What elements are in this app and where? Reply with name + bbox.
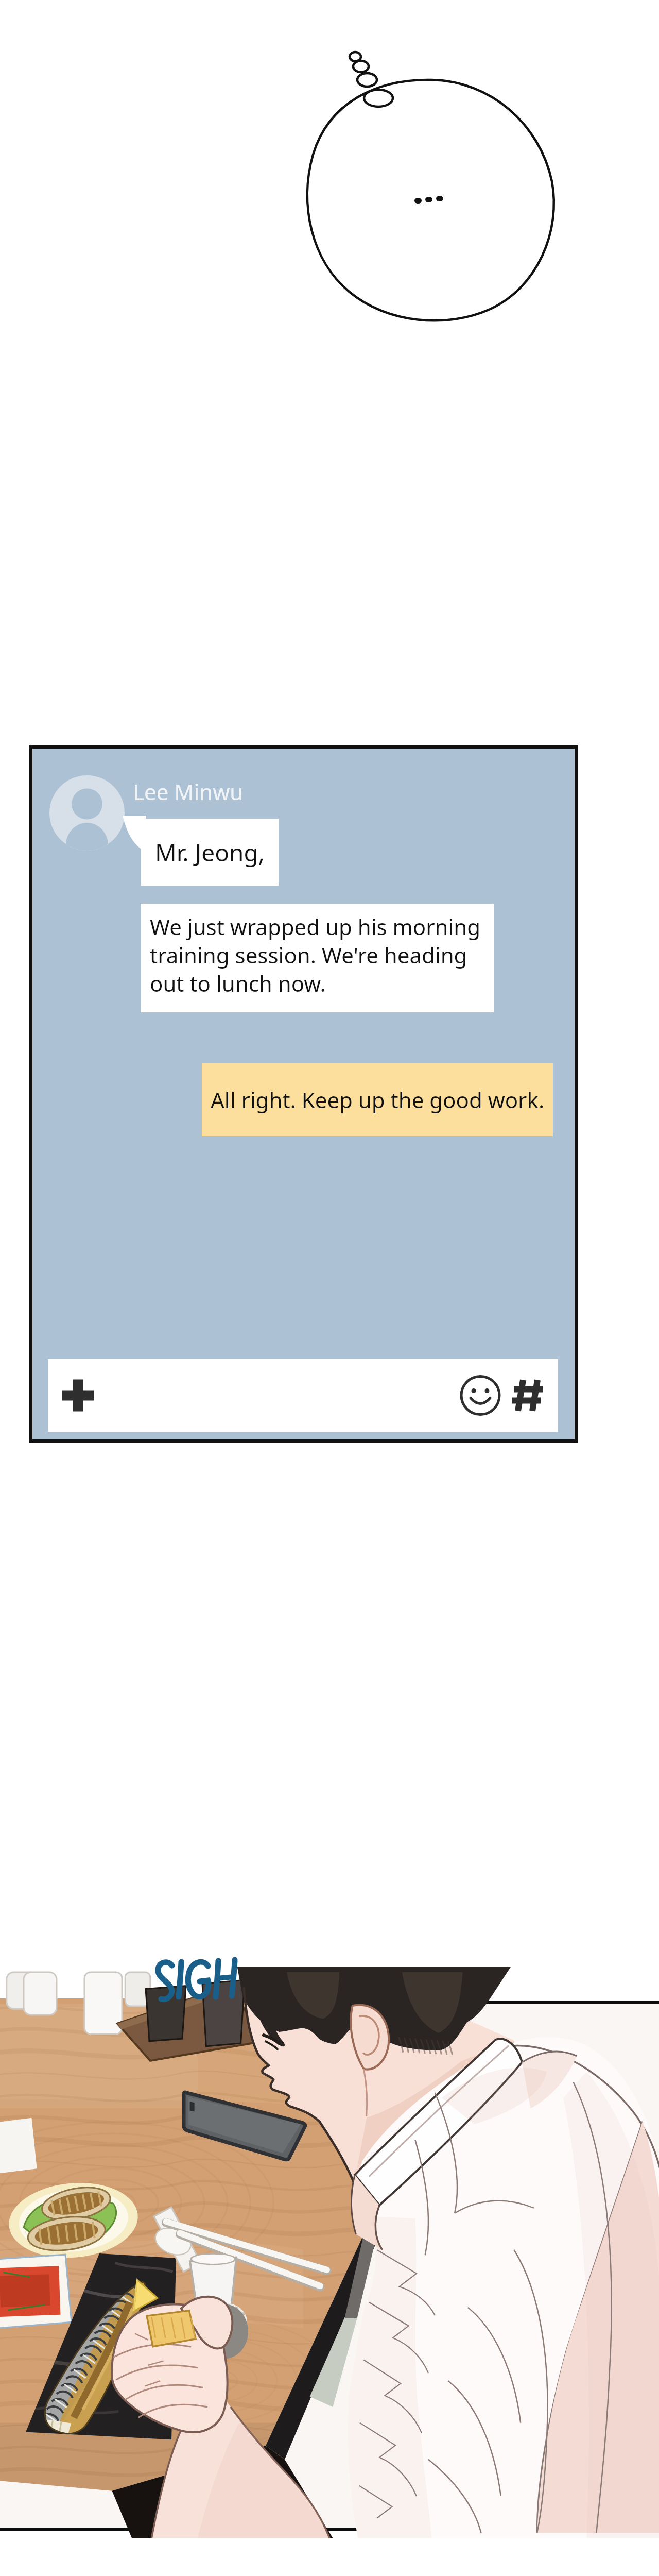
button[interactable]: Profile picture <box>32 749 575 1439</box>
button[interactable]: Profile picture <box>49 775 125 851</box>
button[interactable]: Add attachment <box>48 1359 558 1432</box>
staticText: Mr. Jeong, <box>155 836 265 869</box>
other: SIGH <box>154 1956 239 2003</box>
staticText: All right. Keep up the good work. <box>211 1085 545 1114</box>
staticText: We just wrapped up his morning training … <box>150 912 481 998</box>
button[interactable]: Emoji <box>455 1359 506 1432</box>
button[interactable]: Add attachment <box>48 1359 120 1432</box>
staticText: Lee Minwu <box>133 777 244 806</box>
button[interactable]: Hashtag <box>506 1359 552 1432</box>
